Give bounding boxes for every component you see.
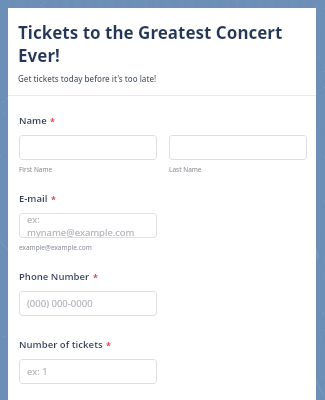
staticText: Name (19, 114, 47, 127)
staticText: Get tickets today before it's too late! (18, 73, 157, 84)
staticText: First Name (19, 165, 53, 174)
staticText: ex: 1 (27, 365, 48, 378)
button[interactable]: Phone number (19, 291, 157, 316)
staticText: Tickets to the Greatest Concert Ever! (18, 21, 306, 67)
staticText: E-mail (19, 192, 48, 205)
staticText: Number of tickets (19, 338, 103, 351)
button[interactable]: E-mail (19, 213, 157, 238)
staticText: * (93, 271, 98, 283)
staticText: * (106, 339, 111, 351)
staticText: * (51, 193, 56, 205)
button[interactable]: First name (19, 135, 157, 160)
staticText: Phone Number (19, 270, 90, 283)
staticText: (000) 000-0000 (27, 297, 93, 310)
staticText: example@example.com (19, 243, 92, 252)
staticText: Last Name (169, 165, 202, 174)
staticText: ex: myname@example.com (27, 213, 149, 238)
button[interactable]: Last name (169, 135, 307, 160)
button[interactable]: Number of tickets (19, 359, 157, 384)
staticText: * (50, 115, 55, 127)
